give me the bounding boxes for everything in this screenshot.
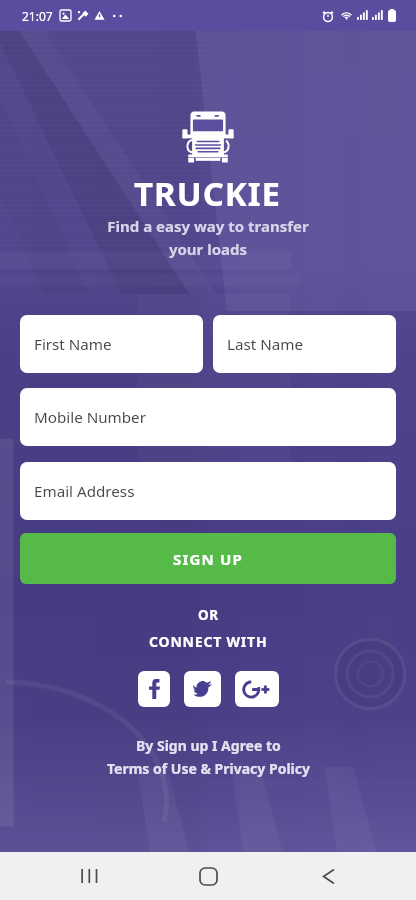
staticText: Email Address [34, 481, 135, 502]
button[interactable]: Back [297, 852, 359, 900]
button[interactable]: Recent apps [58, 852, 120, 900]
staticText: Terms of Use & Privacy Policy [107, 759, 310, 778]
button[interactable]: First Name [20, 315, 203, 373]
staticText: Mobile Number [34, 407, 146, 428]
staticText: TRUCKIE [134, 171, 282, 216]
staticText: First Name [34, 334, 112, 355]
button[interactable]: Last Name [213, 315, 396, 373]
button[interactable]: Mobile Number [20, 388, 396, 446]
staticText: Find a easy way to transfer your loads [107, 216, 309, 259]
staticText: SIGN UP [173, 549, 244, 569]
staticText: CONNECT WITH [149, 632, 268, 651]
button[interactable]: Home [177, 852, 239, 900]
button[interactable]: Sign up with Google Plus [235, 671, 279, 707]
button[interactable]: Email Address [20, 462, 396, 520]
staticText: OR [198, 606, 219, 624]
button[interactable]: Sign up with Twitter [184, 671, 221, 707]
staticText: 21:07 [22, 8, 53, 24]
staticText: By Sign up I Agree to [136, 736, 281, 755]
button[interactable]: Sign up with Facebook [138, 671, 170, 707]
button[interactable]: SIGN UP [20, 533, 396, 584]
staticText: Last Name [227, 334, 304, 355]
